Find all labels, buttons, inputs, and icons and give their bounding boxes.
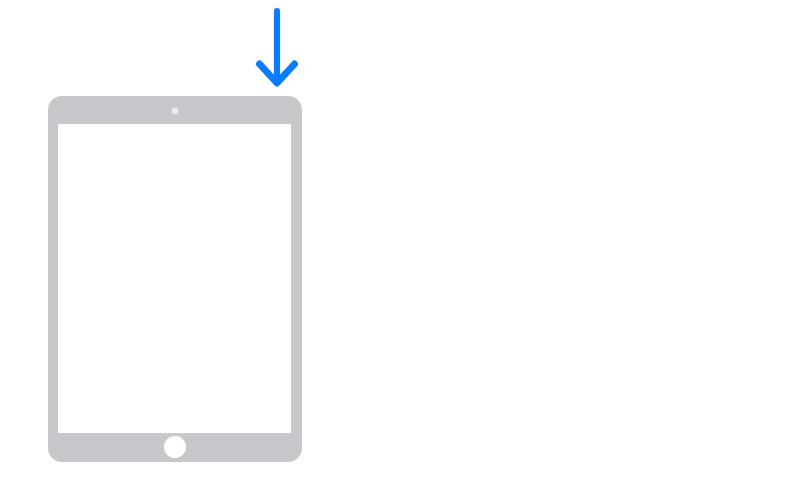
other: Illustration of a tablet with an arrow p… xyxy=(0,0,800,477)
